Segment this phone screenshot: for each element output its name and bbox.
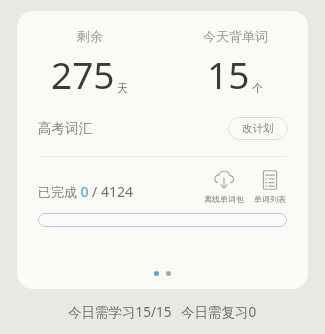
button[interactable]: Offline word pack (202, 168, 246, 205)
staticText: 高考词汇 (38, 120, 92, 137)
staticText: 个 (252, 81, 263, 95)
staticText: 275 (51, 49, 115, 99)
staticText: 今日需学习15/15 (68, 303, 172, 321)
staticText: 今日需复习0 (181, 303, 257, 321)
staticText: 改计划 (242, 122, 274, 135)
staticText: 今天背单词 (203, 28, 268, 44)
staticText: 天 (117, 81, 128, 95)
button[interactable]: 改计划 (228, 117, 288, 140)
button[interactable]: Word list (252, 168, 288, 205)
staticText: 15 (207, 49, 250, 99)
staticText: 剩余 (77, 28, 103, 44)
staticText: 单词列表 (254, 194, 286, 204)
staticText: 已完成 0 / 4124 (38, 182, 133, 201)
staticText: 离线单词包 (204, 194, 244, 204)
